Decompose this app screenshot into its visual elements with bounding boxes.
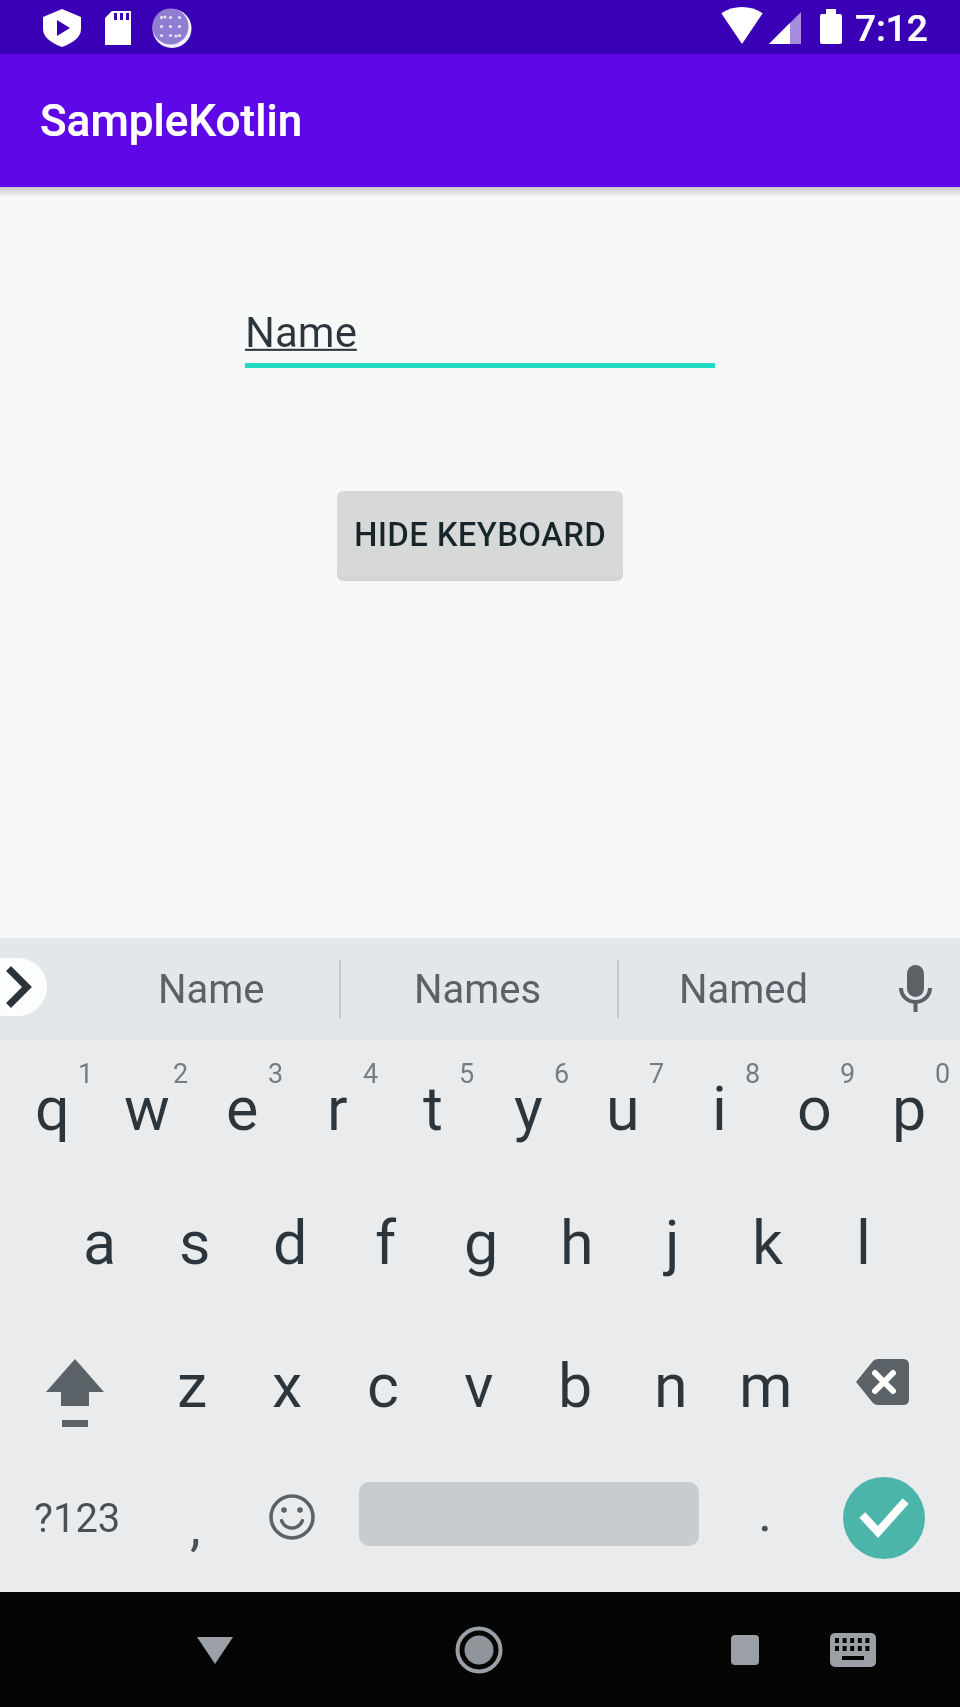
staticText: 8 <box>745 1058 761 1090</box>
staticText: Name <box>158 966 265 1013</box>
button[interactable] <box>843 1477 925 1559</box>
staticText: r <box>327 1073 348 1144</box>
staticText: s <box>179 1207 211 1278</box>
button[interactable]: u <box>589 1048 657 1168</box>
staticText: h <box>560 1207 594 1278</box>
button[interactable]: c <box>349 1325 417 1445</box>
staticText: b <box>558 1350 593 1421</box>
staticText: n <box>654 1350 688 1421</box>
staticText: a <box>83 1207 117 1278</box>
staticText: c <box>367 1350 399 1421</box>
button[interactable]: e <box>208 1048 276 1168</box>
button[interactable]: n <box>637 1325 705 1445</box>
button[interactable]: Name <box>100 938 322 1040</box>
staticText: 9 <box>840 1058 856 1090</box>
staticText: 0 <box>935 1058 951 1090</box>
button[interactable]: r <box>303 1048 371 1168</box>
staticText: w <box>124 1073 170 1144</box>
staticText: v <box>464 1350 494 1421</box>
button[interactable] <box>710 1615 780 1685</box>
staticText: k <box>752 1207 783 1278</box>
staticText: 2 <box>173 1058 189 1090</box>
button[interactable]: p <box>875 1048 943 1168</box>
staticText: m <box>739 1350 793 1421</box>
staticText: 1 <box>78 1058 94 1090</box>
button[interactable]: Named <box>618 938 870 1040</box>
staticText: 7 <box>649 1058 665 1090</box>
button[interactable]: m <box>732 1325 800 1445</box>
button[interactable] <box>444 1615 514 1685</box>
button[interactable]: h <box>543 1182 611 1302</box>
staticText: 6 <box>554 1058 570 1090</box>
button[interactable]: . <box>740 1448 790 1576</box>
staticText: HIDE KEYBOARD <box>354 515 607 554</box>
button[interactable]: s <box>161 1182 229 1302</box>
staticText: j <box>665 1207 680 1278</box>
staticText: o <box>797 1073 832 1144</box>
staticText: Name <box>245 308 357 357</box>
staticText: t <box>423 1073 443 1144</box>
staticText: 4 <box>363 1058 379 1090</box>
button[interactable]: i <box>685 1048 753 1168</box>
staticText: Named <box>679 966 809 1013</box>
button[interactable]: l <box>829 1182 897 1302</box>
staticText: i <box>712 1073 727 1144</box>
button[interactable]: v <box>445 1325 513 1445</box>
button[interactable]: y <box>494 1048 562 1168</box>
staticText: g <box>464 1207 499 1278</box>
staticText: q <box>35 1073 70 1144</box>
staticText: p <box>892 1073 927 1144</box>
button[interactable]: o <box>780 1048 848 1168</box>
staticText: e <box>226 1073 259 1144</box>
staticText: , <box>190 1495 201 1558</box>
staticText: u <box>606 1073 640 1144</box>
button[interactable]: g <box>447 1182 515 1302</box>
button[interactable]: Name <box>245 305 365 359</box>
staticText: 5 <box>459 1058 475 1090</box>
staticText: SampleKotlin <box>40 95 303 147</box>
staticText: Names <box>414 966 542 1013</box>
staticText: f <box>375 1207 397 1278</box>
button[interactable]: q <box>18 1048 86 1168</box>
button[interactable]: Names <box>340 938 616 1040</box>
staticText: ?123 <box>34 1495 121 1542</box>
staticText: y <box>514 1073 543 1144</box>
staticText: . <box>758 1481 773 1544</box>
button[interactable]: z <box>158 1325 226 1445</box>
staticText: l <box>856 1207 871 1278</box>
button[interactable]: b <box>541 1325 609 1445</box>
button[interactable]: f <box>352 1182 420 1302</box>
button[interactable]: ?123 <box>20 1454 135 1582</box>
button[interactable]: d <box>256 1182 324 1302</box>
button[interactable] <box>0 958 47 1016</box>
button[interactable]: j <box>638 1182 706 1302</box>
button[interactable]: x <box>253 1325 321 1445</box>
button[interactable]: a <box>66 1182 134 1302</box>
button[interactable]: , <box>170 1462 220 1590</box>
button[interactable]: HIDE KEYBOARD <box>337 491 623 577</box>
staticText: d <box>273 1207 308 1278</box>
staticText: 3 <box>268 1058 284 1090</box>
button[interactable]: t <box>399 1048 467 1168</box>
button[interactable]: k <box>733 1182 801 1302</box>
staticText: z <box>177 1350 208 1421</box>
button[interactable] <box>818 1615 888 1685</box>
staticText: 7:12 <box>855 7 928 50</box>
button[interactable] <box>180 1615 250 1685</box>
button[interactable]: w <box>113 1048 181 1168</box>
staticText: x <box>272 1350 303 1421</box>
